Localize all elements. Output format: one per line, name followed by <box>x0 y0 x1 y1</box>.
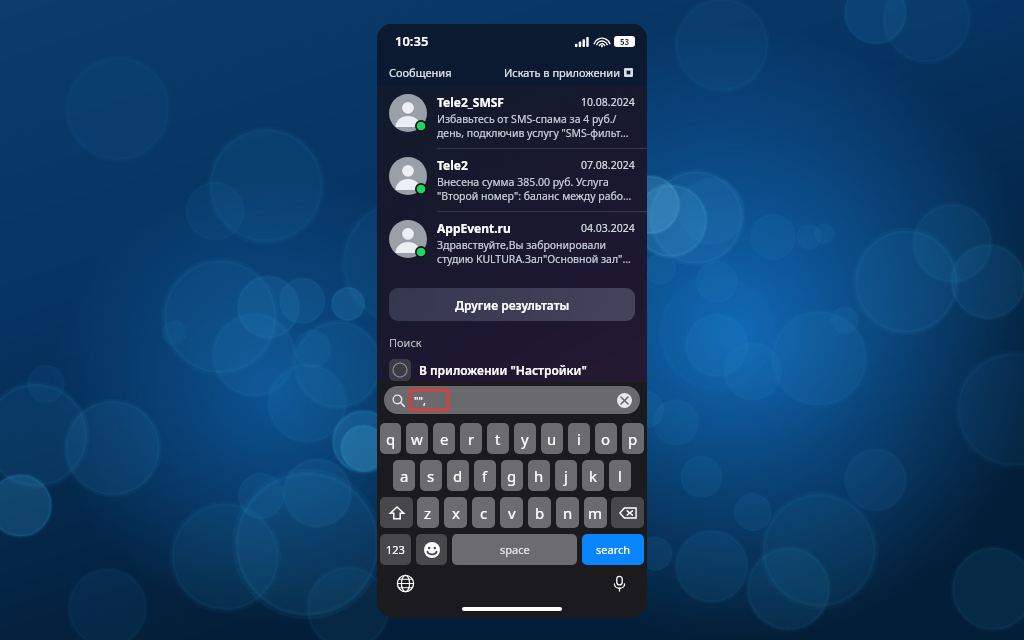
staticText: Избавьтесь от SMS-спама за 4 руб./ <box>437 112 617 126</box>
button[interactable]: c <box>472 497 495 528</box>
button[interactable]: l <box>609 460 631 491</box>
staticText: h <box>534 466 544 486</box>
staticText: g <box>507 466 517 486</box>
button[interactable]: n <box>556 497 579 528</box>
staticText: k <box>589 466 598 486</box>
staticText: 10:35 <box>395 32 429 50</box>
staticText: r <box>468 429 475 449</box>
button[interactable]: Искать в приложении <box>502 62 635 83</box>
button[interactable]: q <box>380 423 401 454</box>
staticText: Искать в приложении <box>504 65 620 80</box>
staticText: search <box>596 542 631 557</box>
staticText: В приложении "Настройки" <box>419 362 587 378</box>
button[interactable]: "", <box>384 386 640 414</box>
staticText: 123 <box>386 542 405 557</box>
staticText: p <box>628 429 638 449</box>
button[interactable]: Tele2_SMSF <box>377 86 647 148</box>
button[interactable]: Emoji <box>416 534 447 565</box>
button[interactable]: w <box>406 423 428 454</box>
button[interactable]: g <box>501 460 523 491</box>
staticText: Tele2_SMSF <box>437 94 581 110</box>
staticText: c <box>480 503 488 523</box>
button[interactable]: p <box>622 423 644 454</box>
button[interactable]: e <box>433 423 455 454</box>
staticText: o <box>601 429 611 449</box>
staticText: f <box>482 466 488 486</box>
staticText: e <box>440 429 449 449</box>
staticText: Поиск <box>389 335 422 350</box>
button[interactable]: Другие результаты <box>389 288 635 321</box>
staticText: 07.08.2024 <box>581 158 635 172</box>
staticText: "Второй номер": баланс между работ... <box>437 189 635 203</box>
button[interactable]: u <box>541 423 563 454</box>
staticText: z <box>424 503 432 523</box>
staticText: день, подключив услугу "SMS-фильт... <box>437 126 629 140</box>
button[interactable]: space <box>452 534 577 565</box>
button[interactable]: Backspace <box>611 497 644 528</box>
button[interactable]: Dictation <box>606 570 632 596</box>
staticText: v <box>508 503 516 523</box>
staticText: space <box>500 542 530 557</box>
other: Open in app <box>624 68 633 77</box>
button[interactable]: В приложении "Настройки" <box>377 359 647 381</box>
button[interactable]: v <box>500 497 523 528</box>
staticText: s <box>427 466 435 486</box>
button[interactable]: d <box>447 460 469 491</box>
button[interactable]: y <box>514 423 536 454</box>
staticText: y <box>521 429 529 449</box>
button[interactable]: i <box>568 423 590 454</box>
button[interactable]: x <box>444 497 467 528</box>
button[interactable]: b <box>528 497 551 528</box>
button[interactable]: Shift <box>380 497 413 528</box>
staticText: u <box>547 429 557 449</box>
staticText: a <box>400 466 409 486</box>
staticText: 10.08.2024 <box>581 95 635 109</box>
staticText: студию KULTURA.Зал"Основной зал"... <box>437 252 631 266</box>
staticText: 53 <box>620 36 630 47</box>
button[interactable]: Change keyboard <box>392 570 418 596</box>
staticText: AppEvent.ru <box>437 220 581 236</box>
button[interactable]: s <box>420 460 442 491</box>
staticText: Внесена сумма 385.00 руб. Услуга <box>437 175 609 189</box>
button[interactable]: Clear <box>617 393 632 408</box>
staticText: b <box>535 503 545 523</box>
button[interactable]: z <box>417 497 439 528</box>
staticText: d <box>453 466 463 486</box>
button[interactable]: 123 <box>380 534 411 565</box>
staticText: 04.03.2024 <box>581 221 635 235</box>
staticText: t <box>495 429 501 449</box>
staticText: j <box>564 466 568 486</box>
button[interactable]: search <box>582 534 644 565</box>
button[interactable]: a <box>393 460 415 491</box>
staticText: Другие результаты <box>455 297 570 313</box>
staticText: x <box>452 503 460 523</box>
button[interactable]: r <box>460 423 482 454</box>
button[interactable]: Tele2 <box>377 149 647 211</box>
button[interactable]: k <box>582 460 604 491</box>
button[interactable]: o <box>595 423 617 454</box>
staticText: Tele2 <box>437 157 581 173</box>
staticText: Сообщения <box>389 65 452 80</box>
button[interactable]: h <box>528 460 550 491</box>
staticText: w <box>411 429 423 449</box>
button[interactable]: m <box>584 497 607 528</box>
button[interactable]: j <box>555 460 577 491</box>
staticText: i <box>577 429 581 449</box>
staticText: "", <box>414 393 426 408</box>
staticText: m <box>588 503 603 523</box>
button[interactable]: t <box>487 423 509 454</box>
staticText: q <box>386 429 396 449</box>
button[interactable]: f <box>474 460 496 491</box>
staticText: l <box>618 466 622 486</box>
staticText: n <box>563 503 573 523</box>
button[interactable]: AppEvent.ru <box>377 212 647 274</box>
staticText: Здравствуйте,Вы забронировали <box>437 238 607 252</box>
